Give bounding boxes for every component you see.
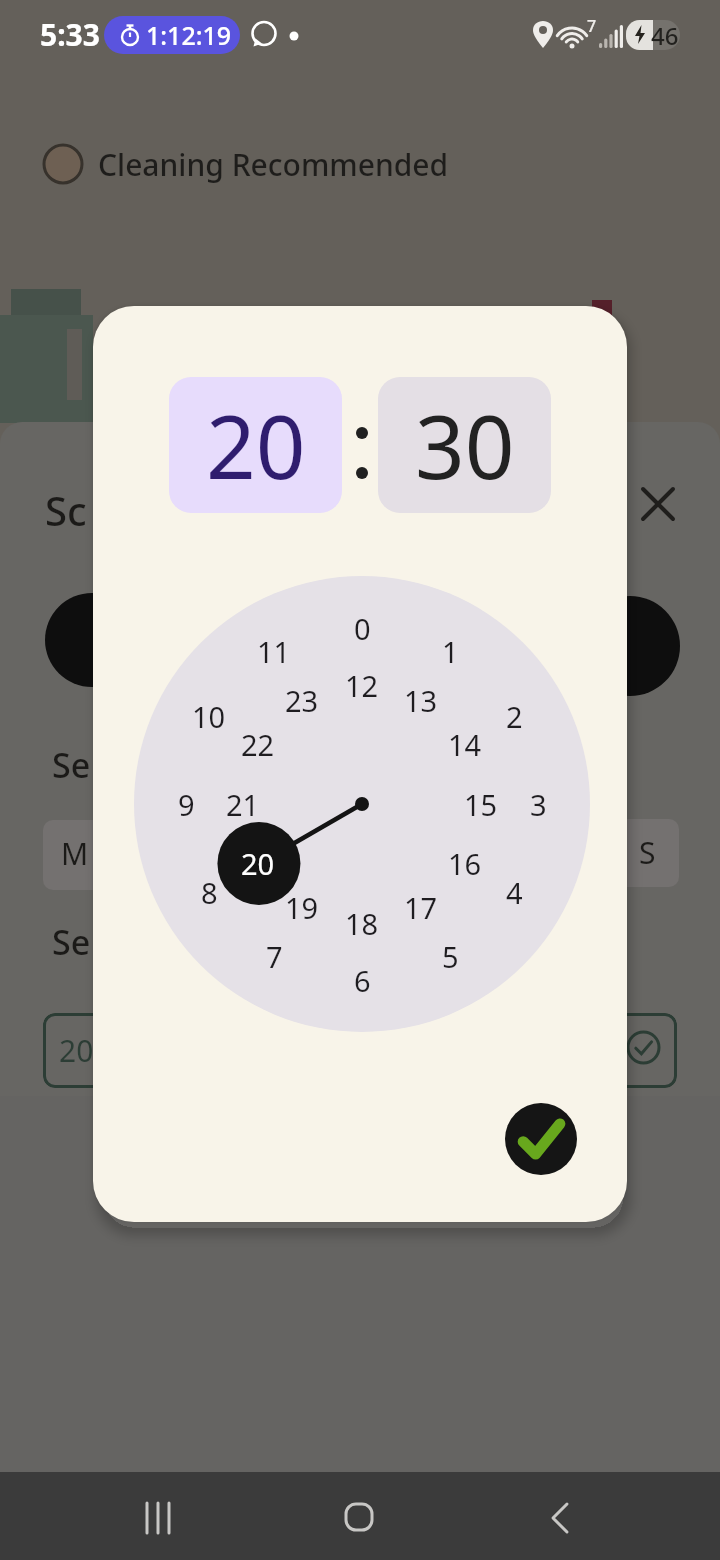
staticText: 4 xyxy=(506,873,523,912)
staticText: 18 xyxy=(345,904,379,943)
button[interactable] xyxy=(344,1502,374,1532)
staticText: Sc xyxy=(45,483,87,537)
staticText: 5 xyxy=(442,937,459,976)
button[interactable] xyxy=(43,820,163,890)
staticText: 3 xyxy=(530,785,547,824)
button[interactable] xyxy=(143,1503,175,1533)
button[interactable] xyxy=(580,596,680,696)
staticText: 20 xyxy=(241,844,275,883)
staticText: 20: xyxy=(59,1030,102,1071)
staticText: 46 xyxy=(651,19,679,52)
staticText: 12 xyxy=(345,666,379,705)
staticText: 7 xyxy=(266,937,283,976)
staticText: Sele xyxy=(52,742,119,788)
staticText: 7 xyxy=(587,15,597,37)
button[interactable] xyxy=(643,489,673,519)
staticText: 19 xyxy=(285,888,319,927)
staticText: S xyxy=(639,832,656,873)
staticText: 8 xyxy=(201,873,218,912)
button[interactable] xyxy=(505,1103,577,1175)
staticText: 6 xyxy=(354,961,371,1000)
button[interactable] xyxy=(45,593,139,687)
staticText: M xyxy=(61,833,89,874)
staticText: 1:12:19 xyxy=(146,18,232,52)
staticText: 14 xyxy=(448,725,482,764)
staticText: 21 xyxy=(226,785,260,824)
staticText: 5:33 xyxy=(40,14,100,55)
staticText: 15 xyxy=(464,785,498,824)
staticText: 20 xyxy=(206,386,306,504)
button[interactable] xyxy=(378,377,551,513)
staticText: 9 xyxy=(178,785,195,824)
staticText: 10 xyxy=(192,697,226,736)
staticText: 11 xyxy=(257,632,291,671)
staticText: 16 xyxy=(448,844,482,883)
staticText: 22 xyxy=(241,725,275,764)
button[interactable] xyxy=(169,377,342,513)
staticText: 0 xyxy=(354,609,371,648)
staticText: 17 xyxy=(404,888,438,927)
button[interactable] xyxy=(612,819,679,887)
button[interactable] xyxy=(42,134,522,194)
staticText: 1 xyxy=(442,632,459,671)
button[interactable] xyxy=(43,1013,677,1088)
button[interactable] xyxy=(549,1503,571,1533)
staticText: Sele xyxy=(52,919,119,965)
staticText: 30 xyxy=(415,386,515,504)
staticText: 2 xyxy=(506,697,523,736)
staticText: Cleaning Recommended xyxy=(98,144,449,185)
staticText: 13 xyxy=(404,681,438,720)
staticText: 23 xyxy=(285,681,319,720)
